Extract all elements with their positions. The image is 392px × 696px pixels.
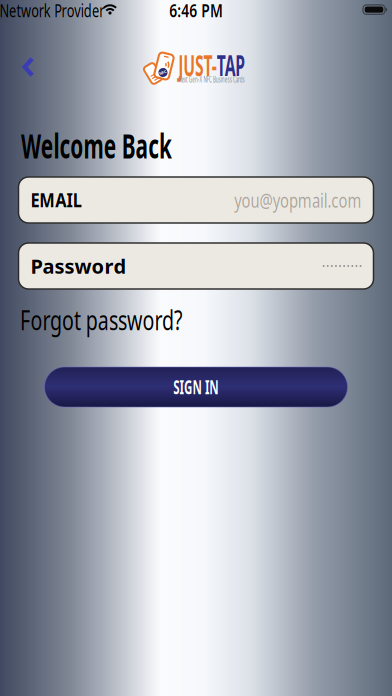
staticText: NFC (159, 70, 167, 75)
staticText: JUST- (152, 47, 221, 84)
staticText: Next Gen-X NFC Business Cards (152, 74, 271, 85)
staticText: TAP (221, 47, 271, 84)
staticText: EMAIL (30, 188, 88, 212)
staticText: 6:46 PM (162, 0, 229, 22)
staticText: SIGN IN (159, 375, 232, 399)
button[interactable]: SIGN IN (44, 367, 347, 407)
button[interactable]: Forgot password? (20, 301, 252, 338)
staticText: Welcome Back (21, 122, 272, 168)
staticText: Network Provider (0, 0, 123, 22)
staticText: Forgot password? (20, 301, 252, 338)
button[interactable]: EMAIL (0, 177, 392, 223)
staticText: you@yopmail.com (189, 187, 361, 213)
button[interactable] (0, 45, 34, 90)
staticText: Password (30, 253, 126, 279)
button[interactable]: Password (0, 243, 392, 289)
